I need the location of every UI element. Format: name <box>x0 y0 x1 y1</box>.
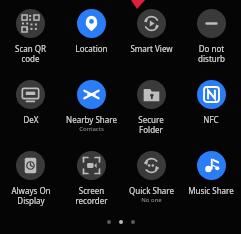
button[interactable]: NFC <box>181 80 241 125</box>
staticText: Scan QR code <box>15 43 46 64</box>
button[interactable]: Screen recorder <box>61 151 121 206</box>
other: NFC <box>197 80 226 109</box>
staticText: Quick Share <box>129 185 174 196</box>
button[interactable]: Smart View <box>121 9 181 54</box>
staticText: Contacts <box>79 125 104 133</box>
other: Scan QR code <box>16 9 45 38</box>
other: Location <box>77 9 106 38</box>
staticText: NFC <box>203 114 219 125</box>
staticText: Always On Display <box>11 185 51 206</box>
staticText: No one <box>141 196 162 204</box>
other: Nearby Share <box>77 80 106 109</box>
button[interactable]: Location <box>61 9 121 54</box>
other: Screen recorder <box>77 151 106 180</box>
other: Always On Display <box>16 151 45 180</box>
staticText: Screen recorder <box>75 185 108 206</box>
staticText: Nearby Share <box>66 114 117 125</box>
button[interactable]: Do not disturb <box>181 9 241 64</box>
other: DeX <box>16 80 45 109</box>
button[interactable]: Music Share <box>181 151 241 196</box>
other: Music Share <box>197 151 226 180</box>
staticText: Secure Folder <box>138 114 164 135</box>
other: Secure Folder <box>137 80 166 109</box>
staticText: Smart View <box>130 43 173 54</box>
staticText: Music Share <box>188 185 234 196</box>
staticText: Location <box>75 43 108 54</box>
button[interactable]: Nearby Share <box>61 80 121 133</box>
other: Quick Share <box>137 151 166 180</box>
button[interactable]: Always On Display <box>0 151 61 206</box>
other: Do not disturb <box>197 9 226 38</box>
staticText: DeX <box>23 114 39 125</box>
other: Smart View <box>137 9 166 38</box>
staticText: Do not disturb <box>198 43 225 64</box>
button[interactable]: DeX <box>0 80 61 125</box>
button[interactable]: Quick Share <box>121 151 181 204</box>
button[interactable]: Secure Folder <box>121 80 181 135</box>
button[interactable]: Scan QR code <box>0 9 61 64</box>
